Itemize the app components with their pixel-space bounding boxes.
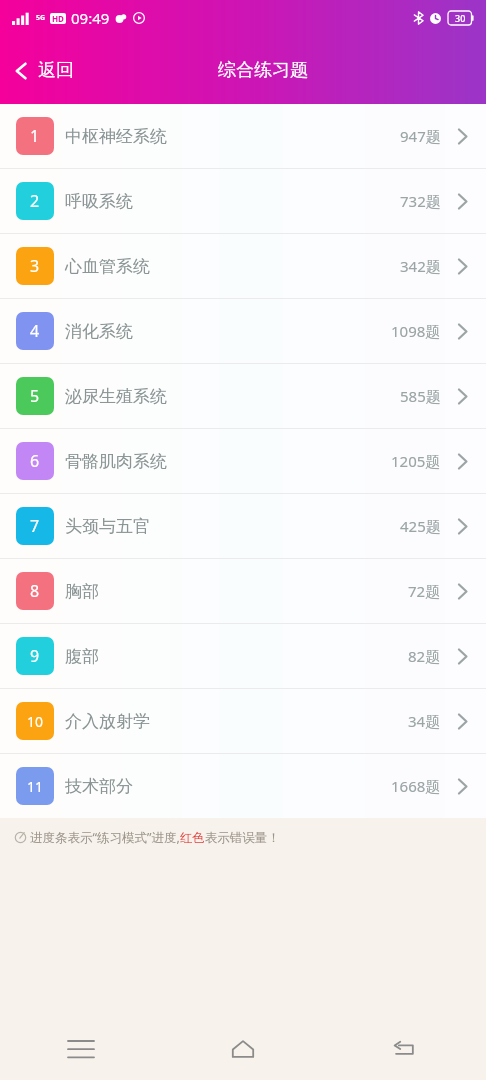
- button[interactable]: 11: [0, 754, 486, 818]
- staticText: 技术部分: [65, 776, 133, 797]
- staticText: 胸部: [65, 581, 99, 602]
- staticText: 1: [30, 125, 40, 147]
- staticText: 综合练习题: [218, 59, 308, 82]
- staticText: 介入放射学: [65, 711, 150, 732]
- staticText: 09:49: [71, 8, 110, 28]
- staticText: 8: [30, 580, 40, 602]
- staticText: 30: [455, 12, 466, 24]
- button[interactable]: Home: [162, 1018, 324, 1080]
- staticText: HD: [52, 13, 64, 24]
- staticText: 7: [30, 515, 40, 537]
- staticText: 342题: [400, 256, 441, 276]
- staticText: 10: [27, 712, 44, 731]
- staticText: 泌尿生殖系统: [65, 386, 167, 407]
- button[interactable]: 5: [0, 364, 486, 428]
- staticText: 返回: [38, 59, 74, 82]
- staticText: 82题: [408, 646, 441, 666]
- staticText: 1668题: [391, 776, 441, 796]
- staticText: 1205题: [391, 451, 441, 471]
- button[interactable]: 6: [0, 429, 486, 493]
- staticText: 425题: [400, 516, 441, 536]
- button[interactable]: 10: [0, 689, 486, 753]
- button[interactable]: 3: [0, 234, 486, 298]
- button[interactable]: Back: [324, 1018, 486, 1080]
- staticText: 4: [30, 320, 40, 342]
- staticText: 呼吸系统: [65, 191, 133, 212]
- staticText: 进度条表示“练习模式”进度,红色表示错误量！: [30, 829, 280, 846]
- staticText: 947题: [400, 126, 441, 146]
- staticText: 6: [30, 450, 40, 472]
- staticText: 585题: [400, 386, 441, 406]
- staticText: 1098题: [391, 321, 441, 341]
- staticText: 心血管系统: [65, 256, 150, 277]
- staticText: 骨骼肌肉系统: [65, 451, 167, 472]
- staticText: 消化系统: [65, 321, 133, 342]
- staticText: 腹部: [65, 646, 99, 667]
- staticText: 72题: [408, 581, 441, 601]
- staticText: 34题: [408, 711, 441, 731]
- button[interactable]: 2: [0, 169, 486, 233]
- button[interactable]: 返回: [0, 51, 86, 90]
- button[interactable]: 4: [0, 299, 486, 363]
- staticText: 5G: [36, 13, 46, 23]
- staticText: 2: [30, 190, 40, 212]
- button[interactable]: 9: [0, 624, 486, 688]
- staticText: 9: [30, 645, 40, 667]
- button[interactable]: 8: [0, 559, 486, 623]
- staticText: 3: [30, 255, 40, 277]
- staticText: 中枢神经系统: [65, 126, 167, 147]
- staticText: 5: [30, 385, 40, 407]
- staticText: 11: [27, 777, 44, 796]
- staticText: 732题: [400, 191, 441, 211]
- button[interactable]: 7: [0, 494, 486, 558]
- button[interactable]: 1: [0, 104, 486, 168]
- button[interactable]: Recent apps: [0, 1018, 162, 1080]
- staticText: 头颈与五官: [65, 516, 150, 537]
